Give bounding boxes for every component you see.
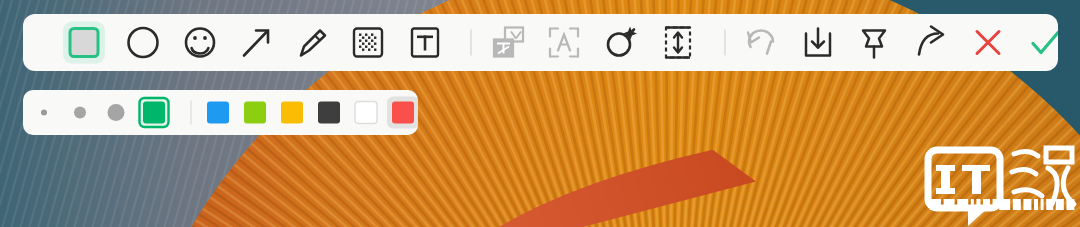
button[interactable]: Undo	[717, 21, 759, 63]
button[interactable]: Scroll capture	[634, 21, 676, 63]
button[interactable]: Red	[376, 95, 410, 129]
button[interactable]: White	[340, 95, 374, 129]
button[interactable]: Translate	[464, 21, 506, 63]
button[interactable]: Done	[1001, 21, 1043, 63]
button[interactable]: Pen	[269, 21, 311, 63]
button[interactable]: Green	[136, 95, 170, 129]
button[interactable]: Thick	[99, 95, 133, 129]
button[interactable]: Amber	[267, 95, 301, 129]
button[interactable]: Save	[774, 21, 816, 63]
button[interactable]: Share	[887, 21, 929, 63]
button[interactable]: Ellipse	[99, 21, 141, 63]
button[interactable]: Rectangle	[42, 21, 84, 63]
button[interactable]: Thin	[27, 95, 61, 129]
button[interactable]: Cancel	[944, 21, 986, 63]
button[interactable]: Extract text	[520, 21, 562, 63]
button[interactable]: Dark	[304, 95, 338, 129]
button[interactable]: Emoji	[156, 21, 198, 63]
button[interactable]: Mosaic	[324, 21, 366, 63]
button[interactable]: Arrow	[212, 21, 254, 63]
button[interactable]: Lime	[229, 95, 263, 129]
button[interactable]: Blue	[191, 95, 225, 129]
button[interactable]: Pin	[830, 21, 872, 63]
button[interactable]: Text	[381, 21, 423, 63]
button[interactable]: Visual search	[577, 21, 619, 63]
button[interactable]: Medium	[63, 95, 97, 129]
